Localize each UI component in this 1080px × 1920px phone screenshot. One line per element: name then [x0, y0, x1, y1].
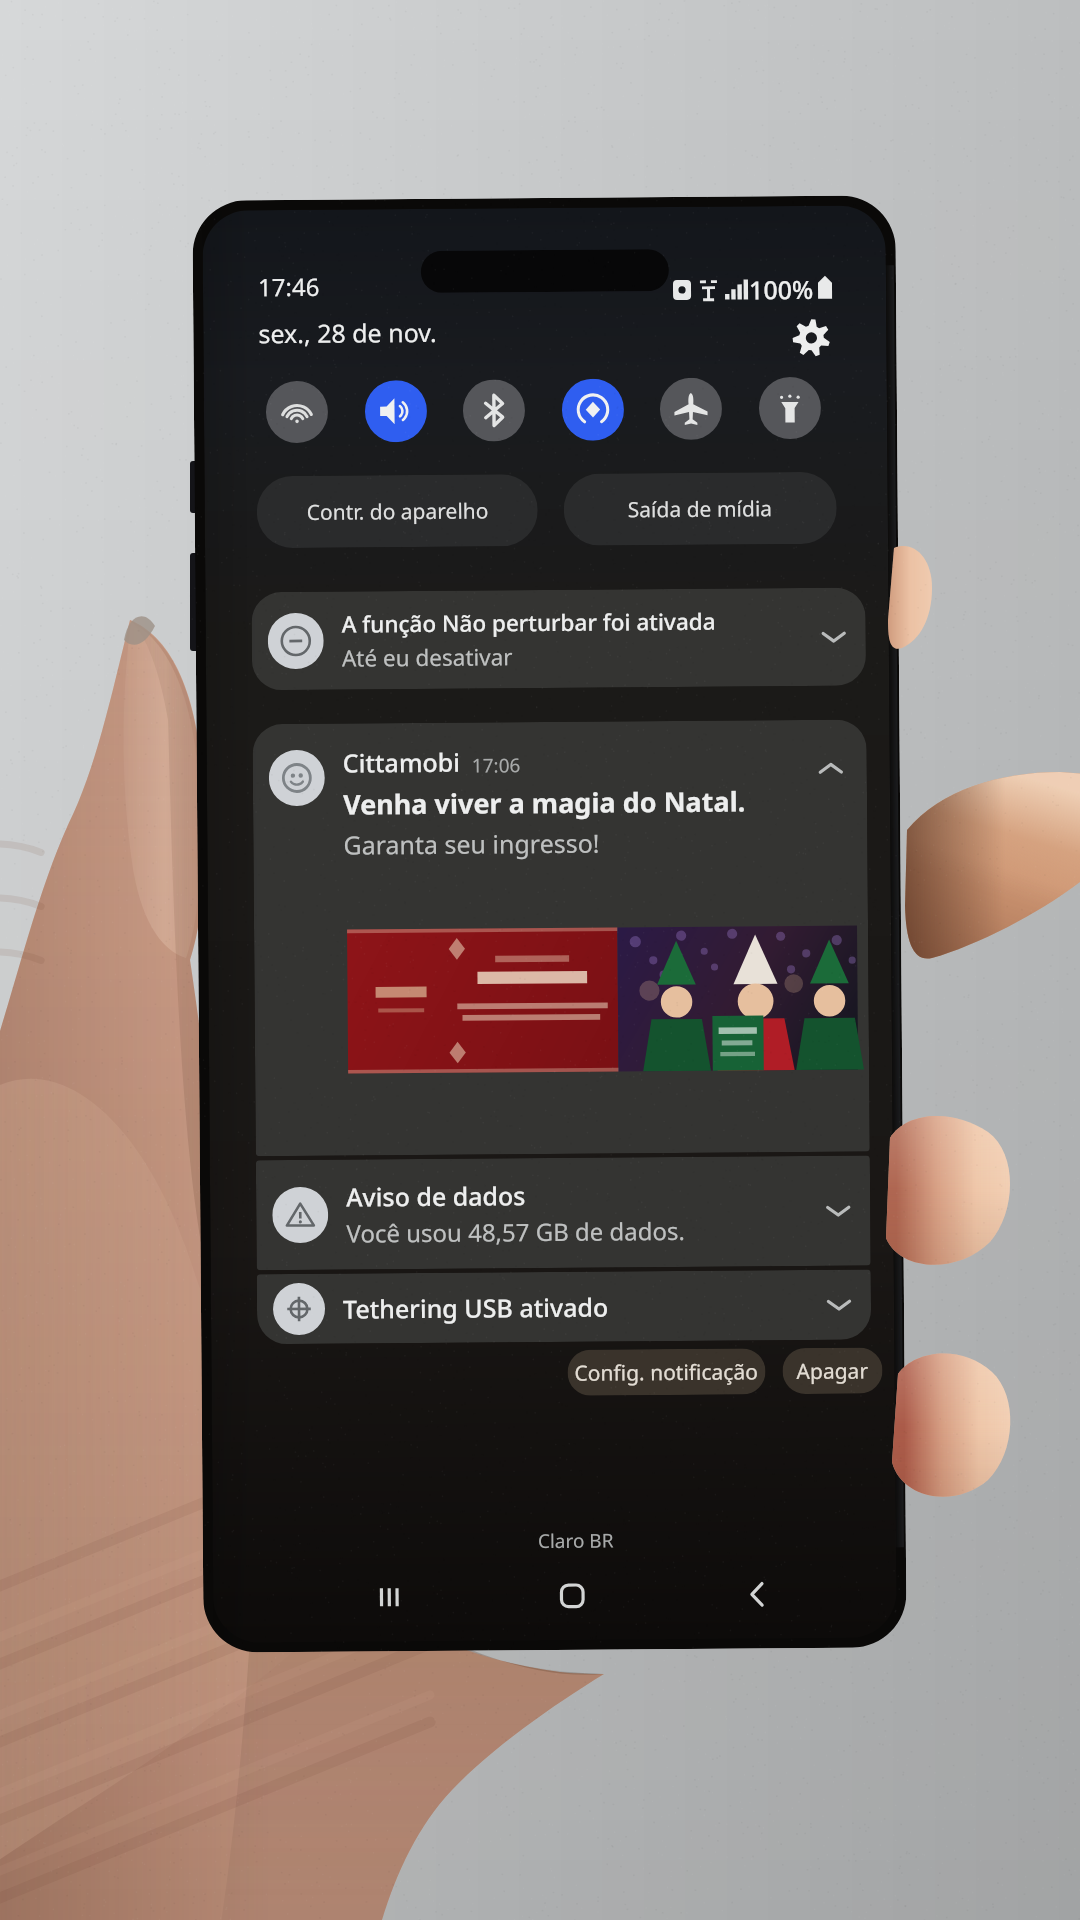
staticText: 100% — [749, 272, 814, 306]
staticText: Contr. do aparelho — [307, 496, 489, 527]
button[interactable]: Sound — [365, 380, 427, 442]
button[interactable]: Airplane mode — [660, 378, 722, 440]
staticText: Tethering USB ativado — [343, 1288, 817, 1326]
button[interactable]: Back — [721, 1558, 794, 1631]
staticText: 17:06 — [472, 752, 521, 779]
staticText: sex., 28 de nov. — [258, 315, 437, 350]
button[interactable]: Cittamobi — [252, 719, 870, 1156]
button[interactable]: A função Não perturbar foi ativada — [251, 587, 866, 690]
button[interactable]: Settings — [783, 310, 840, 366]
button[interactable]: Expand notification — [816, 1189, 860, 1233]
button[interactable]: Wi-Fi — [266, 381, 328, 443]
staticText: Venha viver a magia do Natal. — [343, 782, 746, 823]
button[interactable]: Flashlight — [759, 377, 821, 439]
button[interactable]: Expand notification — [812, 615, 856, 659]
staticText: A função Não perturbar foi ativada — [341, 606, 716, 640]
staticText: Aviso de dados — [346, 1178, 526, 1214]
staticText: Saída de mídia — [628, 494, 773, 524]
staticText: Config. notificação — [574, 1357, 759, 1388]
button[interactable]: Bluetooth — [463, 379, 525, 442]
button[interactable]: Aviso de dados — [256, 1155, 871, 1270]
button[interactable]: Expand notification — [817, 1283, 861, 1327]
button[interactable]: Config. notificação — [567, 1348, 766, 1396]
staticText: Você usou 48,57 GB de dados. — [346, 1214, 685, 1250]
button[interactable]: Collapse — [809, 746, 853, 790]
staticText: Claro BR — [538, 1527, 614, 1554]
button[interactable]: Home — [536, 1560, 609, 1632]
staticText: Cittamobi — [343, 745, 461, 780]
button[interactable]: Contr. do aparelho — [256, 474, 538, 548]
button[interactable]: Apagar — [782, 1347, 883, 1394]
button[interactable]: Auto rotate — [562, 378, 624, 441]
staticText: Garanta seu ingresso! — [343, 826, 600, 862]
button[interactable]: Recent apps — [353, 1561, 426, 1634]
button[interactable]: Tethering USB ativado — [257, 1269, 871, 1344]
staticText: Apagar — [796, 1356, 869, 1386]
button[interactable]: Saída de mídia — [563, 472, 837, 546]
staticText: 17:46 — [258, 270, 320, 303]
staticText: Até eu desativar — [342, 641, 513, 674]
